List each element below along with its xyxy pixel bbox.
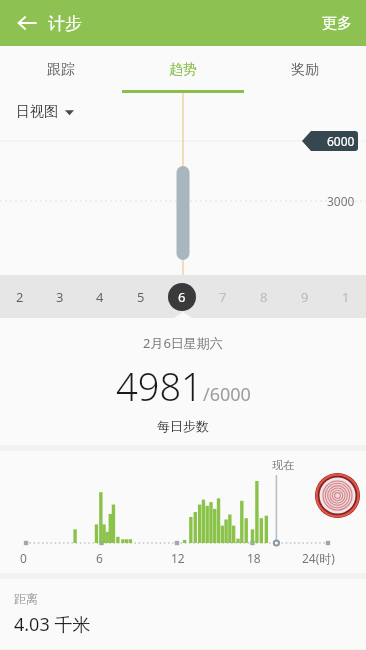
staticText: 4981 [116,360,203,412]
button[interactable]: Achievement badge [315,473,360,518]
staticText: 1 [342,288,350,306]
button[interactable]: 9 [284,275,325,318]
button[interactable]: 日视图 [12,99,78,125]
button[interactable]: 跟踪 [0,46,122,93]
staticText: 3 [56,288,64,306]
button[interactable]: 2 [0,275,40,318]
staticText: 趋势 [169,61,197,79]
staticText: 4.03 千米 [14,612,91,637]
staticText: 6000 [327,133,355,149]
button[interactable]: 更多 [308,4,366,43]
staticText: 计步 [48,13,82,34]
button[interactable]: 7 [202,275,243,318]
staticText: 6 [178,288,186,306]
staticText: 18 [247,550,261,566]
staticText: 8 [260,288,268,306]
staticText: 3000 [327,193,355,209]
button[interactable]: 1 [325,275,366,318]
staticText: 24(时) [302,550,335,566]
staticText: 跟踪 [47,61,75,79]
staticText: 7 [219,288,227,306]
button[interactable]: 距离 [0,579,366,649]
button[interactable]: 3 [40,275,80,318]
button[interactable]: 8 [243,275,284,318]
button[interactable]: 2月6日星期六 [0,318,366,445]
staticText: 5 [137,288,145,306]
staticText: 6 [96,550,103,566]
staticText: 2 [16,288,24,306]
button[interactable]: 6 [161,275,202,318]
staticText: 日视图 [16,103,58,121]
button[interactable]: 4 [80,275,120,318]
staticText: 更多 [322,14,352,33]
button[interactable]: 5 [120,275,161,318]
staticText: 每日步数 [157,418,209,434]
staticText: 现在 [272,458,294,472]
staticText: 12 [171,550,185,566]
button[interactable]: 奖励 [244,46,366,93]
staticText: /6000 [203,382,251,407]
staticText: 0 [20,550,27,566]
staticText: 4 [96,288,104,306]
staticText: 2月6日星期六 [143,334,223,352]
staticText: 奖励 [291,61,319,79]
staticText: 距离 [14,591,38,606]
button[interactable]: Back [10,6,44,40]
button[interactable]: 现在 [0,451,366,573]
button[interactable]: 趋势 [122,46,244,93]
staticText: 9 [301,288,309,306]
